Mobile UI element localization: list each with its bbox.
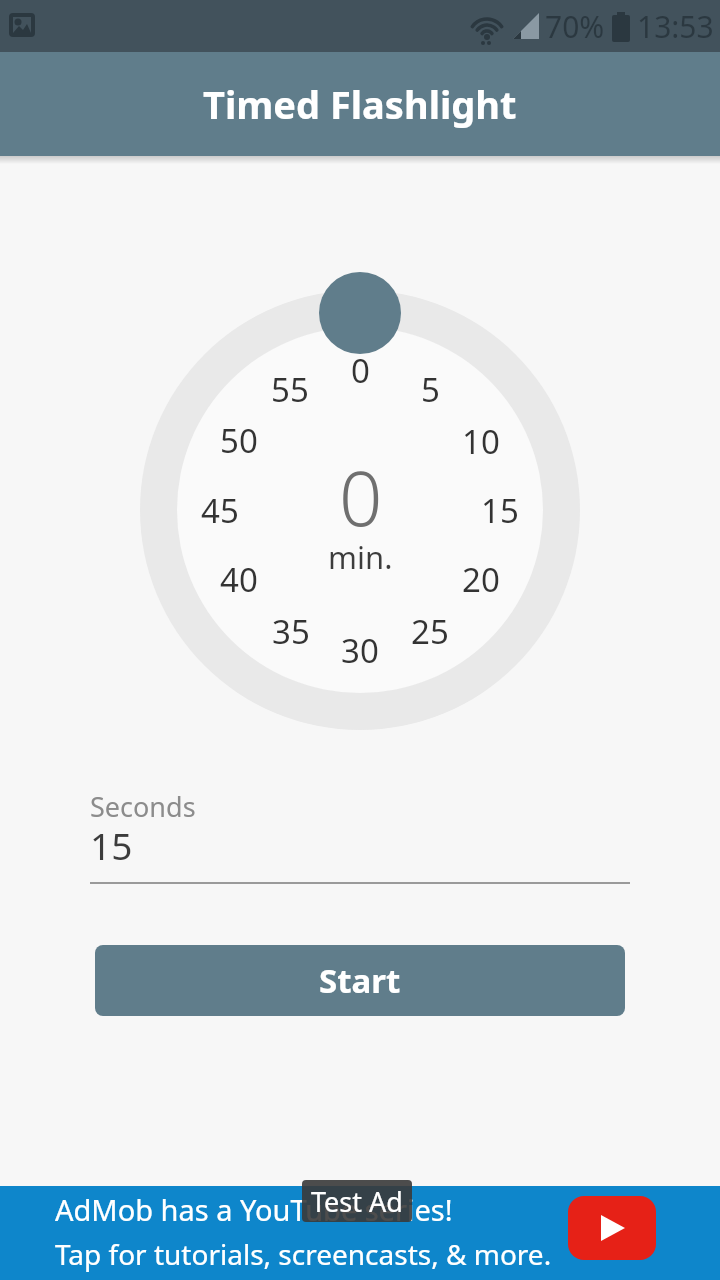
button[interactable]: 0 bbox=[140, 290, 580, 730]
staticText: 0 bbox=[339, 445, 383, 549]
staticText: 55 bbox=[271, 367, 309, 412]
staticText: 25 bbox=[411, 609, 449, 654]
staticText: 45 bbox=[201, 488, 239, 533]
staticText: Timed Flashlight bbox=[203, 78, 517, 130]
staticText: 10 bbox=[462, 419, 500, 464]
staticText: 13:53 bbox=[637, 6, 714, 47]
staticText: 40 bbox=[220, 557, 258, 602]
button[interactable]: AdMob has a YouTube series! bbox=[0, 1186, 720, 1280]
staticText: Seconds bbox=[90, 788, 196, 825]
staticText: Start bbox=[319, 958, 401, 1003]
staticText: 15 bbox=[90, 820, 133, 870]
staticText: 20 bbox=[462, 557, 500, 602]
staticText: Tap for tutorials, screencasts, & more. bbox=[55, 1235, 552, 1273]
button[interactable]: Start bbox=[95, 945, 625, 1016]
staticText: Test Ad bbox=[311, 1183, 403, 1220]
staticText: 5 bbox=[421, 367, 440, 412]
staticText: 15 bbox=[481, 488, 519, 533]
staticText: 70% bbox=[545, 6, 605, 47]
staticText: 50 bbox=[220, 418, 258, 463]
button[interactable] bbox=[90, 782, 630, 886]
staticText: 30 bbox=[341, 628, 379, 673]
staticText: 0 bbox=[351, 348, 370, 393]
staticText: min. bbox=[328, 536, 393, 578]
staticText: 35 bbox=[272, 609, 310, 654]
staticText: AdMob has a YouTube series! bbox=[55, 1190, 453, 1229]
